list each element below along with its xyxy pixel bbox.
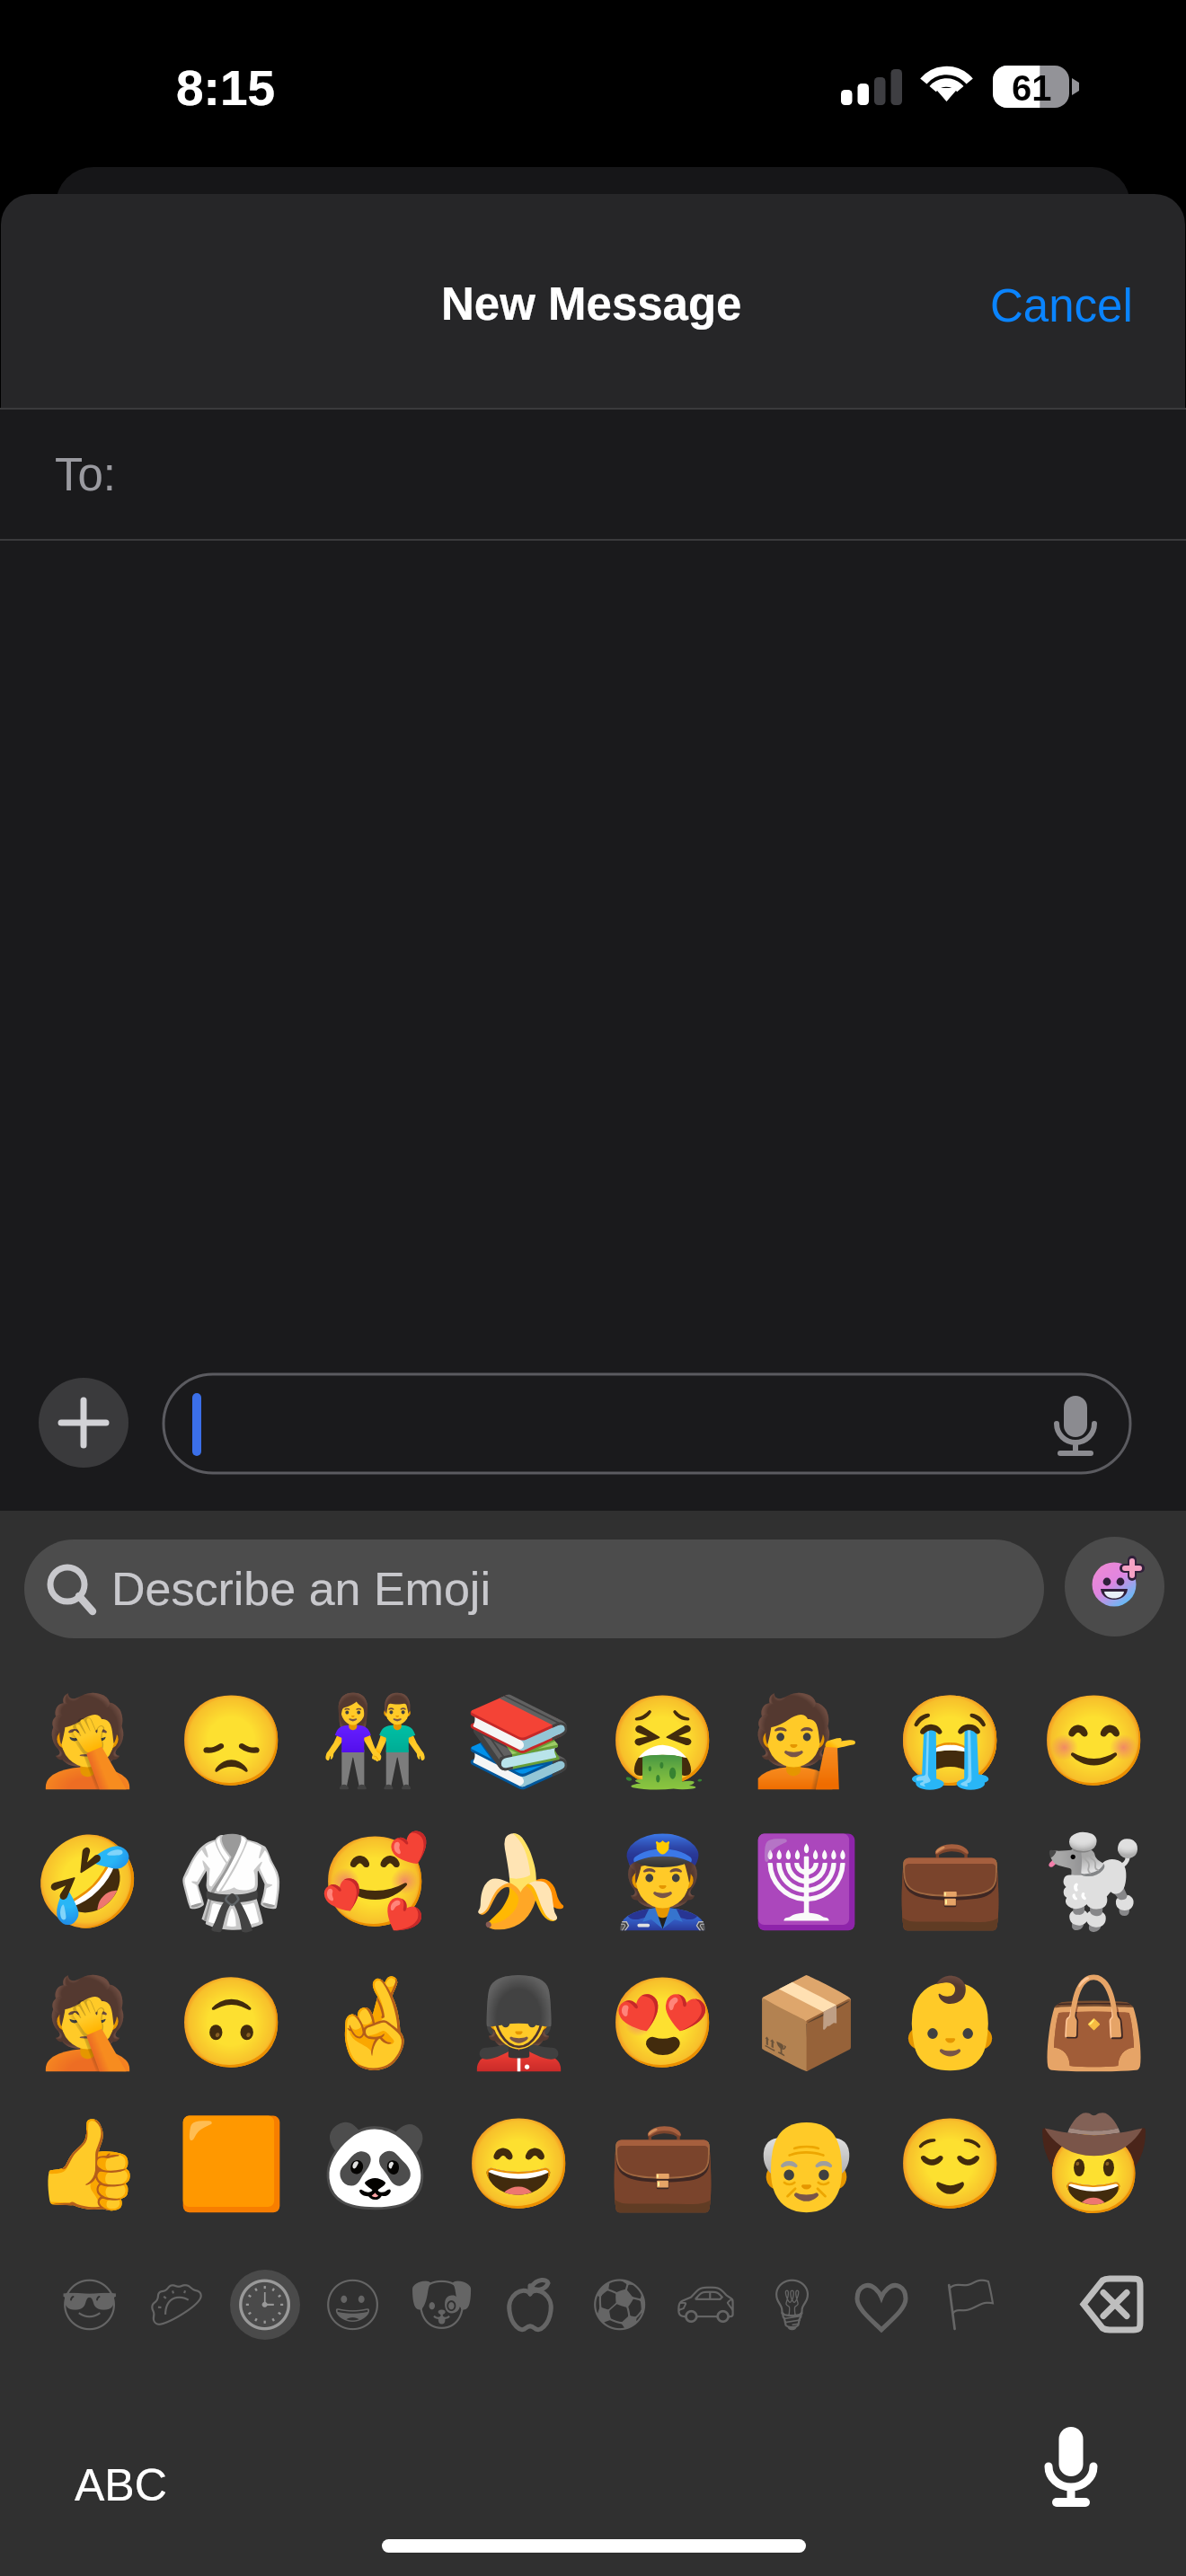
staticText: 📚 [464, 1689, 574, 1793]
button[interactable]: Smileys [49, 2264, 130, 2345]
button[interactable]: Describe an Emoji [24, 1539, 1044, 1638]
staticText: 🤦 [32, 1689, 143, 1793]
staticText: 🟧 [176, 2113, 287, 2216]
staticText: 😍 [607, 1972, 718, 2075]
button[interactable]: 😞 [175, 1685, 287, 1796]
staticText: 😞 [176, 1689, 287, 1793]
staticText: 👫 [320, 1689, 430, 1793]
button[interactable]: 🤞 [319, 1967, 430, 2078]
button[interactable]: 🥰 [319, 1826, 430, 1937]
button[interactable]: Backspace [1066, 2266, 1155, 2343]
button[interactable]: 🐼 [319, 2108, 430, 2219]
staticText: 🥰 [320, 1831, 430, 1934]
staticText: 👶 [895, 1972, 1005, 2075]
button[interactable]: 👮 [606, 1826, 718, 1937]
staticText: 💼 [895, 1831, 1005, 1934]
button[interactable]: Cancel [954, 251, 1176, 360]
button[interactable]: 🍌 [463, 1826, 574, 1937]
button[interactable]: 📚 [463, 1685, 574, 1796]
staticText: 😌 [895, 2113, 1005, 2216]
button[interactable]: Symbols [841, 2264, 922, 2345]
button[interactable]: 💁 [750, 1685, 862, 1796]
staticText: New Message [441, 278, 742, 330]
staticText: 🥋 [176, 1831, 287, 1934]
staticText: 🙃 [176, 1972, 287, 2075]
staticText: 🥟 [145, 2275, 209, 2334]
staticText: 🏳️ [939, 2275, 1004, 2334]
button[interactable]: Create Genmoji [1065, 1537, 1164, 1636]
button[interactable]: 👜 [1038, 1967, 1149, 2078]
button[interactable]: Recently used [225, 2264, 305, 2345]
staticText: 🤞 [320, 1972, 430, 2075]
button[interactable]: 🐩 [1038, 1826, 1149, 1937]
staticText: 🐼 [320, 2113, 430, 2216]
staticText: 😊 [1039, 1689, 1149, 1793]
staticText: 😀 [321, 2275, 385, 2334]
button[interactable]: 👴 [750, 2108, 862, 2219]
button[interactable]: 😌 [894, 2108, 1005, 2219]
staticText: 😄 [464, 2113, 574, 2216]
button[interactable]: 😍 [606, 1967, 718, 2078]
staticText: ⚽ [588, 2275, 652, 2334]
button[interactable]: 📦 [750, 1967, 862, 2078]
button[interactable]: ABC [48, 2433, 194, 2537]
staticText: 👜 [1039, 1972, 1149, 2075]
staticText: 👴 [751, 2113, 862, 2216]
button[interactable]: 🤦 [31, 1967, 143, 2078]
staticText: 🐩 [1039, 1831, 1149, 1934]
button[interactable]: Activity [580, 2264, 660, 2345]
staticText: 💼 [607, 2113, 718, 2216]
button[interactable]: Travel [666, 2264, 747, 2345]
staticText: 👮 [607, 1831, 718, 1934]
button[interactable]: 🟧 [175, 2108, 287, 2219]
button[interactable]: 👍 [31, 2108, 143, 2219]
staticText: 8:15 [176, 60, 276, 115]
button[interactable]: 🤮 [606, 1685, 718, 1796]
staticText: 💡 [760, 2275, 825, 2334]
button[interactable]: 😄 [463, 2108, 574, 2219]
button[interactable]: 🙃 [175, 1967, 287, 2078]
button[interactable]: 💂 [463, 1967, 574, 2078]
staticText: 📦 [751, 1972, 862, 2075]
staticText: 💁 [751, 1689, 862, 1793]
staticText: Cancel [990, 280, 1133, 331]
staticText: 🤣 [32, 1831, 143, 1934]
staticText: 61 [1012, 68, 1052, 109]
staticText: 💂 [464, 1972, 574, 2075]
button[interactable]: 🤦 [31, 1685, 143, 1796]
staticText: 👍 [32, 2113, 143, 2216]
staticText: 🕒 [233, 2275, 297, 2334]
staticText: 🤠 [1039, 2113, 1149, 2216]
button[interactable]: 🥋 [175, 1826, 287, 1937]
button[interactable]: 💼 [606, 2108, 718, 2219]
staticText: 🐶 [410, 2275, 474, 2334]
button[interactable]: Emotions [313, 2264, 394, 2345]
staticText: 🤮 [607, 1689, 718, 1793]
staticText: 🚗 [674, 2275, 739, 2334]
staticText: 🍌 [464, 1831, 574, 1934]
button[interactable]: 🤠 [1038, 2108, 1149, 2219]
button[interactable]: Objects [752, 2264, 833, 2345]
staticText: 😎 [58, 2275, 122, 2334]
button[interactable]: Animals [402, 2264, 482, 2345]
staticText: 🤦 [32, 1972, 143, 2075]
button[interactable]: Dictation [1025, 2419, 1115, 2509]
button[interactable] [164, 1374, 1130, 1473]
button[interactable]: Flags [931, 2264, 1012, 2345]
button[interactable]: Add attachment [39, 1378, 128, 1468]
button[interactable]: 😊 [1038, 1685, 1149, 1796]
button[interactable]: To: [0, 410, 1186, 541]
button[interactable]: Food & drink [490, 2264, 571, 2345]
button[interactable]: 😭 [894, 1685, 1005, 1796]
button[interactable]: 💼 [894, 1826, 1005, 1937]
staticText: 🕎 [751, 1831, 862, 1934]
button[interactable]: Food [137, 2264, 217, 2345]
staticText: 😭 [895, 1689, 1005, 1793]
button[interactable]: 👫 [319, 1685, 430, 1796]
staticText: ABC [75, 2460, 167, 2510]
button[interactable]: 👶 [894, 1967, 1005, 2078]
staticText: To: [55, 449, 117, 500]
staticText: Describe an Emoji [111, 1563, 491, 1615]
button[interactable]: 🤣 [31, 1826, 143, 1937]
button[interactable]: 🕎 [750, 1826, 862, 1937]
